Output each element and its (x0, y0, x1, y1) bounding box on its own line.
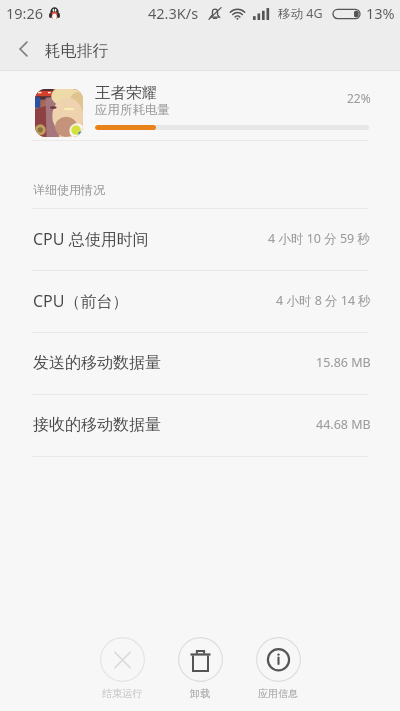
staticText: 19:26 (6, 3, 44, 23)
button[interactable]: CPU（前台） (0, 270, 400, 332)
staticText: 详细使用情况 (33, 182, 105, 197)
staticText: 4 小时 8 分 14 秒 (276, 292, 371, 309)
button[interactable]: Uninstall (170, 637, 230, 700)
staticText: 王者荣耀 (95, 83, 157, 103)
staticText: 接收的移动数据量 (33, 415, 161, 435)
button[interactable]: Back (3, 29, 43, 69)
button[interactable]: 接收的移动数据量 (0, 394, 400, 456)
staticText: 44.68 MB (316, 416, 371, 433)
staticText: 耗电排行 (45, 41, 109, 61)
staticText: 卸载 (190, 687, 210, 700)
staticText: 应用所耗电量 (95, 102, 170, 118)
button[interactable]: 发送的移动数据量 (0, 332, 400, 394)
staticText: 应用信息 (258, 687, 298, 700)
button[interactable]: 王者荣耀 (0, 71, 400, 140)
button[interactable]: Stop running (92, 637, 152, 700)
button[interactable]: CPU 总使用时间 (0, 208, 400, 270)
staticText: 移动 4G (278, 5, 323, 22)
staticText: 4 小时 10 分 59 秒 (268, 230, 371, 247)
staticText: CPU（前台） (33, 290, 129, 312)
staticText: CPU 总使用时间 (33, 228, 149, 250)
staticText: 15.86 MB (316, 354, 371, 371)
staticText: 22% (347, 90, 371, 106)
staticText: 发送的移动数据量 (33, 353, 161, 373)
staticText: 结束运行 (102, 687, 142, 700)
staticText: 42.3K/s (148, 3, 199, 23)
staticText: 13% (366, 3, 395, 23)
button[interactable]: App info (248, 637, 308, 700)
